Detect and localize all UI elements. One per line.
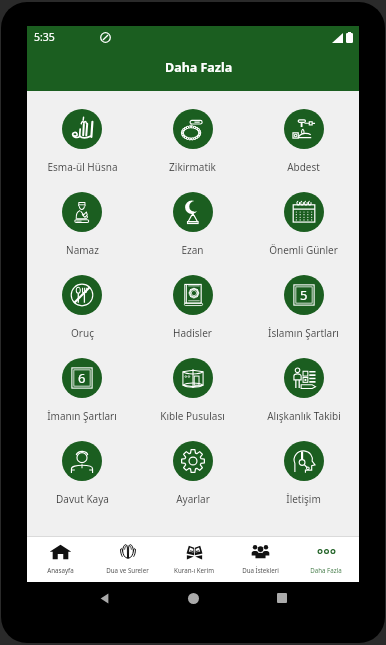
staticText: Daha Fazla bbox=[165, 59, 233, 76]
staticText: Hadisler bbox=[173, 326, 212, 340]
staticText: Daha Fazla bbox=[310, 566, 342, 574]
staticText: 6 bbox=[78, 369, 86, 387]
button[interactable]: Zikirmatik bbox=[137, 91, 248, 174]
staticText: Ayarlar bbox=[176, 492, 210, 506]
staticText: İslamın Şartları bbox=[268, 326, 339, 340]
button[interactable]: Hadisler bbox=[137, 257, 248, 340]
button[interactable]: İletişim bbox=[248, 423, 359, 506]
button[interactable]: Back bbox=[92, 586, 116, 610]
button[interactable]: Kıble Pusulası bbox=[137, 340, 248, 423]
staticText: Ezan bbox=[181, 243, 204, 257]
staticText: İletişim bbox=[286, 492, 321, 506]
staticText: Kıble Pusulası bbox=[160, 409, 225, 423]
staticText: Önemli Günler bbox=[269, 243, 338, 257]
button[interactable]: 6 bbox=[27, 340, 137, 423]
button[interactable]: Anasayfa bbox=[27, 537, 94, 582]
staticText: 5 bbox=[300, 286, 308, 304]
staticText: Kuran-ı Kerim bbox=[174, 566, 214, 574]
staticText: Dua ve Sureler bbox=[106, 566, 149, 574]
staticText: İmanın Şartları bbox=[47, 409, 117, 423]
button[interactable]: Dua İstekleri bbox=[227, 537, 293, 582]
staticText: Dua İstekleri bbox=[242, 566, 279, 574]
button[interactable]: Esma-ül Hüsna bbox=[27, 91, 137, 174]
button[interactable]: Kuran-ı Kerim bbox=[161, 537, 227, 582]
staticText: Namaz bbox=[66, 243, 99, 257]
button[interactable]: Oruç bbox=[27, 257, 137, 340]
button[interactable]: Önemli Günler bbox=[248, 174, 359, 257]
staticText: Zikirmatik bbox=[169, 160, 216, 174]
button[interactable]: Ezan bbox=[137, 174, 248, 257]
button[interactable]: Recents bbox=[270, 586, 294, 610]
button[interactable]: Dua ve Sureler bbox=[94, 537, 161, 582]
staticText: Davut Kaya bbox=[56, 492, 109, 506]
button[interactable]: Daha Fazla bbox=[293, 537, 359, 582]
button[interactable]: Alışkanlık Takibi bbox=[248, 340, 359, 423]
staticText: Esma-ül Hüsna bbox=[47, 160, 118, 174]
button[interactable]: Davut Kaya bbox=[27, 423, 137, 506]
staticText: Anasayfa bbox=[47, 566, 74, 574]
staticText: Alışkanlık Takibi bbox=[267, 409, 341, 423]
button[interactable]: Abdest bbox=[248, 91, 359, 174]
staticText: Abdest bbox=[287, 160, 320, 174]
button[interactable]: Home bbox=[181, 586, 205, 610]
staticText: Oruç bbox=[71, 326, 94, 340]
button[interactable]: Ayarlar bbox=[137, 423, 248, 506]
button[interactable]: Namaz bbox=[27, 174, 137, 257]
button[interactable]: 5 bbox=[248, 257, 359, 340]
staticText: 5:35 bbox=[34, 30, 55, 44]
